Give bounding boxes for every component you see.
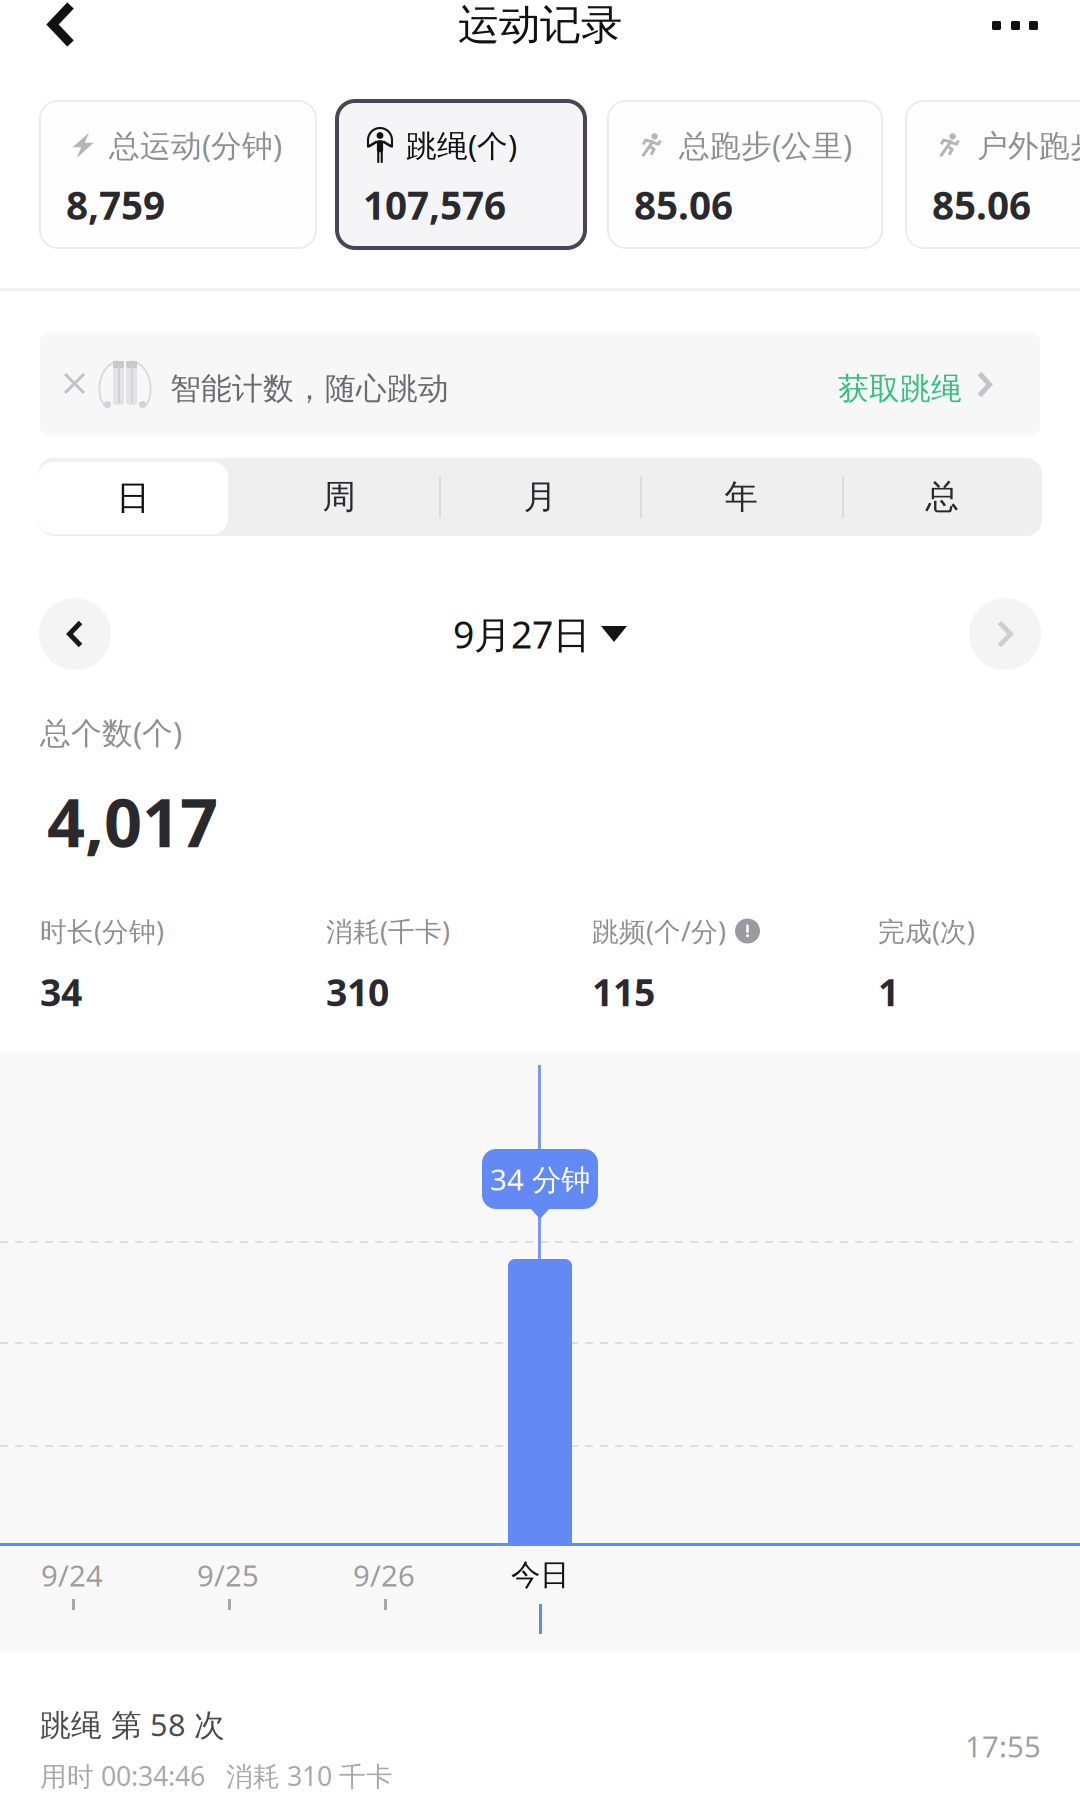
button[interactable]: 周: [239, 458, 439, 536]
staticText: 34: [40, 967, 82, 1017]
staticText: 总运动(分钟): [109, 125, 282, 165]
staticText: 9/24: [41, 1555, 103, 1594]
button[interactable]: 户外跑步(公里): [906, 101, 1080, 248]
button[interactable]: 总: [842, 458, 1042, 536]
staticText: 4,017: [47, 777, 218, 865]
staticText: 总个数(个): [40, 712, 182, 753]
staticText: 总跑步(公里): [679, 125, 852, 165]
staticText: 户外跑步(公里): [977, 125, 1080, 165]
staticText: 85.06: [932, 179, 1031, 230]
button[interactable]: More options: [955, 0, 1065, 72]
staticText: 310: [326, 967, 389, 1017]
button[interactable]: 日: [38, 462, 228, 534]
staticText: 总: [925, 476, 958, 517]
staticText: 17:55: [965, 1726, 1041, 1765]
button[interactable]: 跳绳(个): [337, 101, 585, 248]
button[interactable]: 总运动(分钟): [40, 101, 316, 248]
staticText: 跳绳 第 58 次: [40, 1704, 225, 1745]
staticText: 85.06: [634, 179, 733, 230]
button[interactable]: 智能计数，随心跳动: [40, 332, 1040, 436]
button[interactable]: Previous day: [39, 598, 111, 670]
staticText: 跳频(个/分): [592, 913, 726, 949]
staticText: 时长(分钟): [40, 913, 164, 949]
staticText: 获取跳绳: [838, 370, 962, 408]
button[interactable]: Back: [0, 0, 115, 72]
staticText: 1: [878, 967, 899, 1017]
staticText: 今日: [511, 1557, 569, 1593]
staticText: 34 分钟: [490, 1159, 590, 1198]
staticText: 115: [592, 967, 655, 1017]
staticText: 跳绳(个): [406, 125, 517, 165]
staticText: 8,759: [66, 179, 165, 230]
button[interactable]: Next day: [969, 598, 1041, 670]
staticText: 9/26: [353, 1555, 415, 1594]
staticText: 日: [116, 477, 149, 518]
staticText: 用时 00:34:46 消耗 310 千卡: [40, 1758, 393, 1793]
button[interactable]: 年: [641, 458, 841, 536]
button[interactable]: 9月27日: [400, 598, 680, 670]
button[interactable]: 总跑步(公里): [608, 101, 882, 248]
staticText: 107,576: [363, 179, 506, 230]
staticText: 年: [724, 476, 757, 517]
button[interactable]: 跳绳 第 58 次: [0, 1692, 1080, 1813]
staticText: 智能计数，随心跳动: [170, 370, 449, 408]
staticText: 9/25: [197, 1555, 259, 1594]
staticText: 9月27日: [453, 609, 590, 659]
staticText: 完成(次): [878, 913, 975, 949]
button[interactable]: 月: [440, 458, 640, 536]
staticText: 周: [322, 476, 355, 517]
staticText: 月: [523, 476, 556, 517]
staticText: 消耗(千卡): [326, 913, 450, 949]
staticText: 运动记录: [458, 0, 622, 50]
